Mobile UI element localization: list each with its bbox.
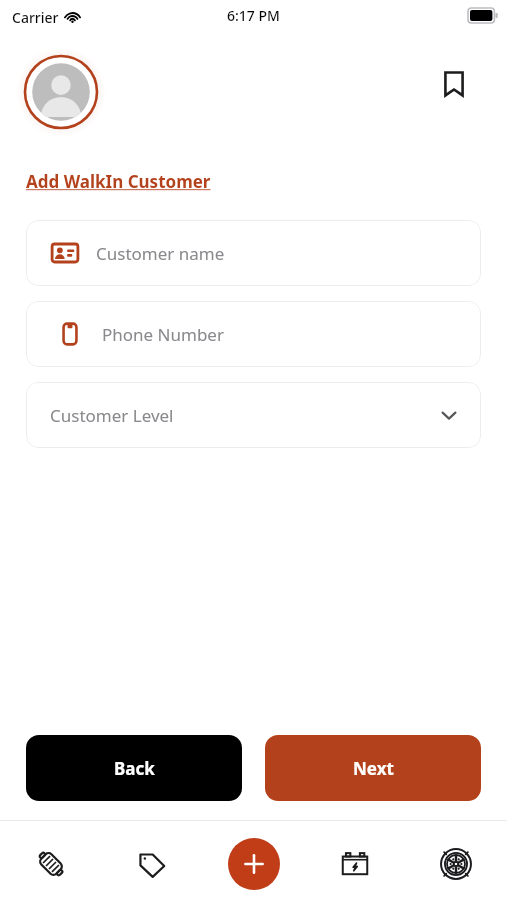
button[interactable]: Tyres [430,838,482,890]
button[interactable]: Next [265,735,481,801]
button[interactable]: Back [26,735,242,801]
staticText: Next [353,757,394,780]
button[interactable]: Phone Number [26,301,481,367]
button[interactable]: Add WalkIn Customer [26,170,211,193]
staticText: Add WalkIn Customer [26,170,211,193]
staticText: Back [114,757,155,780]
button[interactable]: Offers [126,838,178,890]
button[interactable]: Customer Level [26,382,481,448]
button[interactable]: Add [228,838,280,890]
button[interactable]: Bookmark [430,60,478,108]
staticText: Customer name [96,242,225,265]
staticText: Customer Level [50,404,174,427]
button[interactable]: Customer name [26,220,481,286]
button[interactable]: Profile [16,47,106,137]
staticText: 6:17 PM [227,6,280,25]
staticText: Carrier [12,8,59,27]
staticText: Phone Number [102,323,224,346]
button[interactable]: Filters [25,838,77,890]
button[interactable]: Battery [329,838,381,890]
